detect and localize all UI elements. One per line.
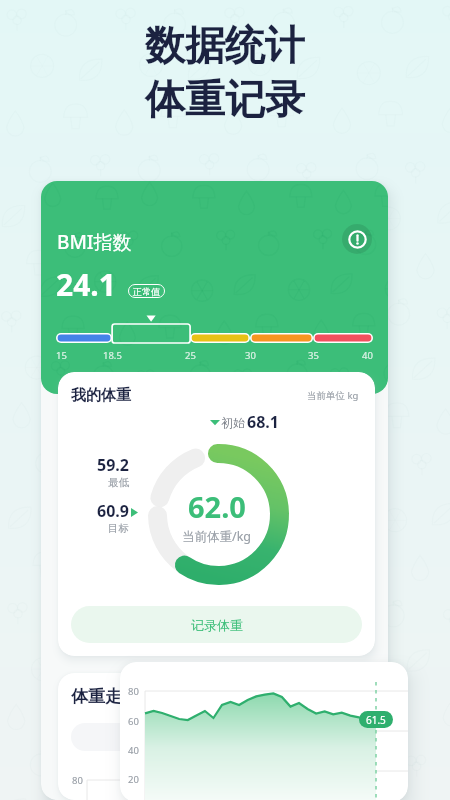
staticText: 当前单位 kg [307,389,359,402]
staticText: 68.1 [247,411,279,433]
staticText: 我的体重 [71,386,131,405]
staticText: 35 [308,349,319,362]
staticText: 当前体重/kg [182,528,252,545]
staticText: 24.1 [56,264,116,305]
staticText: 40 [362,349,373,362]
staticText: 体重记录 [145,74,305,124]
staticText: 80 [72,774,83,787]
staticText: 目标 [108,522,129,535]
staticText: 数据统计 [145,20,305,70]
staticText: 20 [128,773,139,786]
staticText: 59.2 [97,454,129,476]
staticText: 体重走势 [71,686,139,707]
staticText: 30 [245,349,256,362]
staticText: 15 [56,349,67,362]
staticText: 最低 [108,476,129,489]
staticText: 18.5 [103,349,122,362]
staticText: BMI指数 [57,229,132,255]
staticText: 初始 [221,415,245,430]
button[interactable]: BMI 说明 [342,224,372,254]
staticText: 80 [128,685,139,698]
button[interactable] [71,723,187,751]
staticText: 记录体重 [191,617,243,633]
staticText: 正常值 [133,286,160,297]
staticText: 40 [128,744,139,757]
staticText: 61.5 [366,713,386,727]
staticText: 60 [128,715,139,728]
staticText: 60.9 [97,500,129,522]
staticText: 62.0 [188,487,246,526]
staticText: 25 [185,349,196,362]
button[interactable]: 记录体重 [71,606,362,643]
